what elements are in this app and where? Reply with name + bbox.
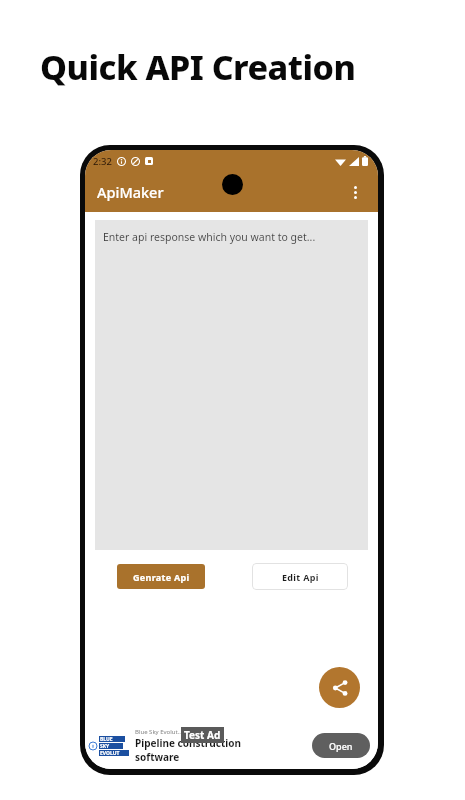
staticText: software bbox=[135, 750, 180, 764]
staticText: Blue Sky Evolut... bbox=[135, 728, 183, 736]
button[interactable]: More options bbox=[340, 177, 370, 207]
button[interactable]: Open bbox=[312, 733, 370, 758]
staticText: Test Ad bbox=[184, 728, 221, 742]
staticText: Edit Api bbox=[282, 571, 319, 583]
button[interactable]: Enter api response which you want to get… bbox=[95, 220, 368, 550]
button[interactable]: BLUE bbox=[85, 722, 378, 769]
staticText: SKY bbox=[100, 743, 110, 749]
staticText: Pipeline construction bbox=[135, 736, 242, 750]
staticText: Enter api response which you want to get… bbox=[103, 230, 316, 244]
staticText: BLUE bbox=[100, 736, 113, 742]
button[interactable]: Edit Api bbox=[252, 563, 348, 590]
staticText: 2:32 bbox=[93, 155, 112, 168]
staticText: Quick API Creation bbox=[40, 44, 449, 90]
button[interactable]: Share bbox=[319, 667, 360, 708]
button[interactable]: Genrate Api bbox=[117, 564, 205, 589]
staticText: ApiMaker bbox=[97, 182, 164, 202]
staticText: EVOLUT bbox=[100, 750, 120, 756]
staticText: Genrate Api bbox=[133, 571, 190, 583]
staticText: Open bbox=[329, 740, 353, 752]
